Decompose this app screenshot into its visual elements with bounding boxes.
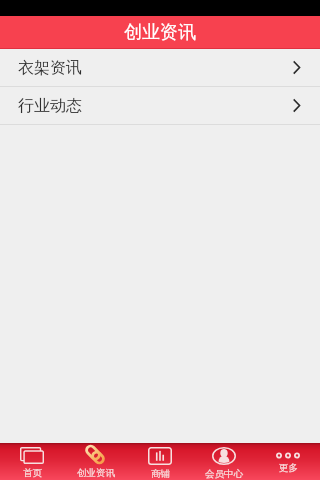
- staticText: 会员中心: [205, 468, 243, 480]
- button[interactable]: 行业动态: [0, 87, 320, 125]
- button[interactable]: 衣架资讯: [0, 49, 320, 87]
- button[interactable]: Home: [0, 444, 64, 479]
- staticText: 创业资讯: [124, 21, 196, 44]
- staticText: 行业动态: [18, 96, 82, 116]
- staticText: 首页: [23, 467, 42, 479]
- button[interactable]: Member center: [192, 444, 256, 480]
- staticText: 更多: [279, 462, 298, 474]
- button[interactable]: More: [256, 449, 320, 474]
- staticText: 衣架资讯: [18, 58, 82, 78]
- staticText: 商铺: [151, 468, 170, 480]
- button[interactable]: Business news: [64, 444, 128, 479]
- staticText: 创业资讯: [77, 467, 115, 479]
- button[interactable]: Shops: [128, 444, 192, 480]
